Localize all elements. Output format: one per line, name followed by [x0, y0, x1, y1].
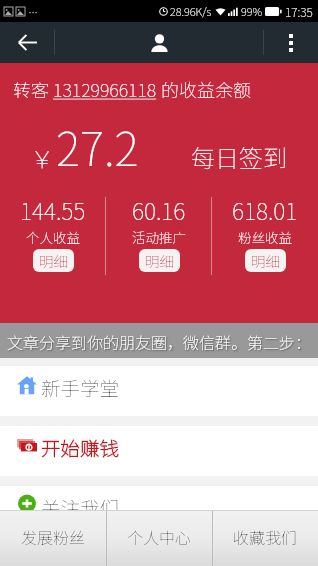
button[interactable]: 明细	[33, 249, 74, 272]
button[interactable]: 文章分享到你的朋友圈，微信群。第二步：丶	[0, 323, 318, 358]
staticText: 13129966118	[53, 76, 157, 102]
staticText: 粉丝收益	[238, 227, 292, 247]
button[interactable]: 新手学堂	[0, 366, 318, 416]
button[interactable]: 明细	[139, 249, 180, 272]
button[interactable]: 关注我们	[0, 486, 318, 510]
staticText: 17:35	[285, 3, 313, 20]
staticText: 开始赚钱	[41, 433, 120, 461]
staticText: 发展粉丝	[21, 525, 86, 548]
staticText: 的收益余额	[157, 76, 251, 102]
staticText: 活动推广	[132, 227, 186, 247]
staticText: 60.16	[132, 193, 186, 226]
staticText: 文章分享到你的朋友圈，微信群。第二步：丶	[7, 330, 318, 353]
staticText: 关注我们	[41, 493, 120, 510]
staticText: 新手学堂	[41, 373, 120, 401]
staticText: 转客	[13, 76, 53, 102]
button[interactable]: More options	[264, 22, 318, 63]
button[interactable]: 收藏我们	[213, 511, 318, 566]
staticText: 明细	[39, 250, 68, 271]
staticText: 明细	[251, 250, 280, 271]
staticText: 144.55	[20, 193, 86, 226]
staticText: 每日签到	[191, 139, 287, 174]
staticText: ￥	[30, 140, 54, 175]
staticText: 明细	[145, 250, 174, 271]
button[interactable]: 每日签到	[191, 139, 287, 174]
button[interactable]: Profile	[137, 22, 181, 63]
staticText: 28.96K/s	[170, 3, 212, 19]
button[interactable]: Back	[0, 22, 54, 63]
staticText: 个人中心	[127, 525, 192, 548]
staticText: 99%	[241, 3, 263, 19]
button[interactable]: 开始赚钱	[0, 426, 318, 476]
staticText: 618.01	[232, 193, 298, 226]
staticText: 27.2	[56, 113, 139, 180]
button[interactable]: 个人中心	[107, 511, 212, 566]
staticText: 收藏我们	[233, 525, 298, 548]
staticText: 个人收益	[26, 227, 80, 247]
button[interactable]: 明细	[245, 249, 286, 272]
button[interactable]: 发展粉丝	[0, 511, 106, 566]
